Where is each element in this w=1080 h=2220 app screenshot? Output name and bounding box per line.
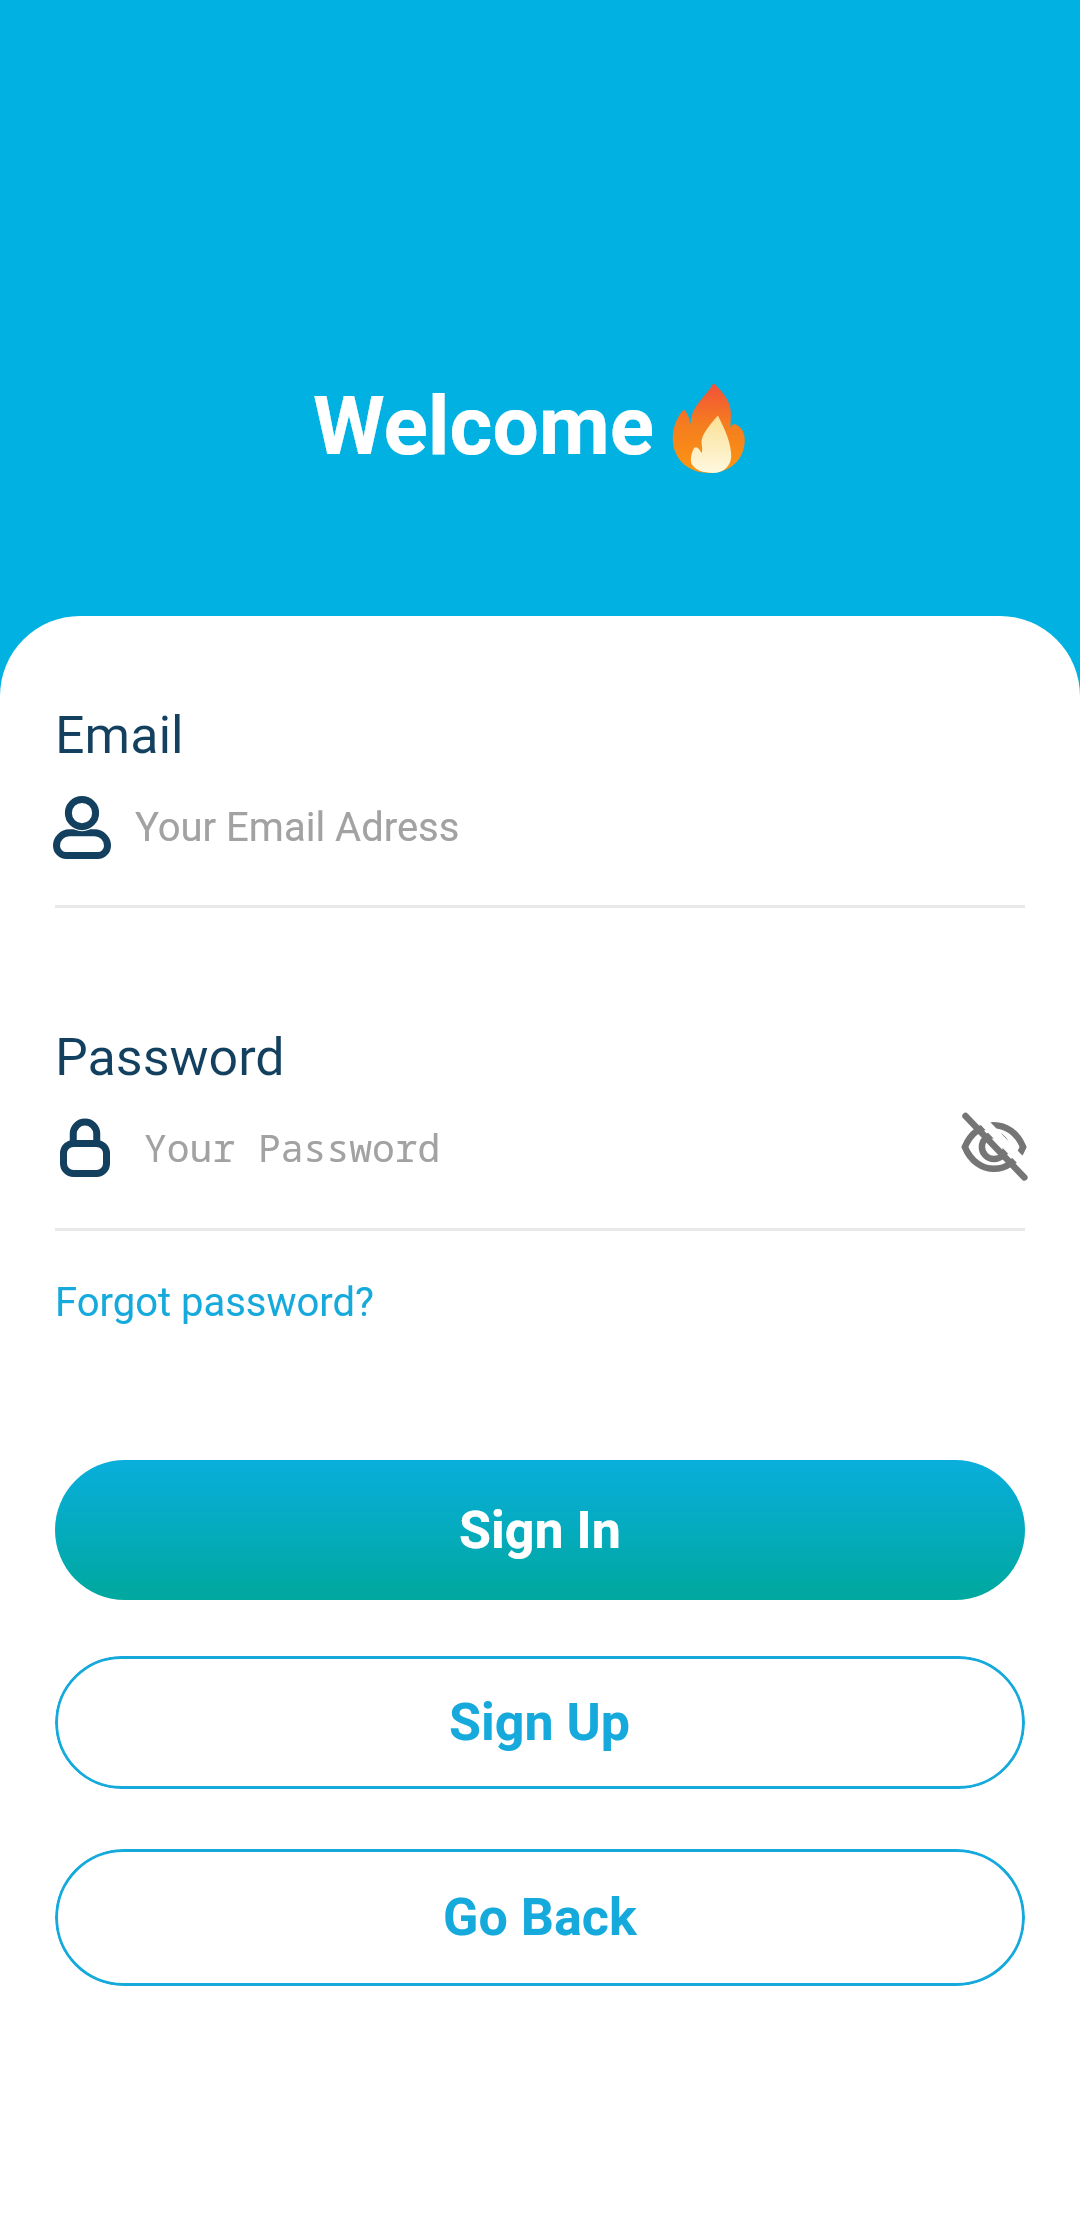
button[interactable]: Go Back bbox=[55, 1849, 1025, 1986]
button[interactable]: Sign Up bbox=[55, 1656, 1025, 1789]
staticText: Sign In bbox=[459, 1500, 621, 1561]
button[interactable]: Forgot password? bbox=[55, 1279, 375, 1326]
staticText: Your Password bbox=[144, 1121, 441, 1173]
staticText: Email bbox=[55, 705, 184, 766]
staticText: Sign Up bbox=[449, 1692, 631, 1753]
button[interactable] bbox=[963, 1116, 1025, 1178]
staticText: Welcome bbox=[313, 378, 655, 474]
button[interactable]: Sign In bbox=[55, 1460, 1025, 1600]
staticText: Go Back bbox=[443, 1887, 637, 1948]
button[interactable]: Your Password bbox=[60, 1116, 1025, 1178]
button[interactable]: Your Email Adress bbox=[53, 795, 1025, 859]
staticText: Password bbox=[55, 1027, 285, 1088]
staticText: Your Email Adress bbox=[135, 804, 460, 851]
